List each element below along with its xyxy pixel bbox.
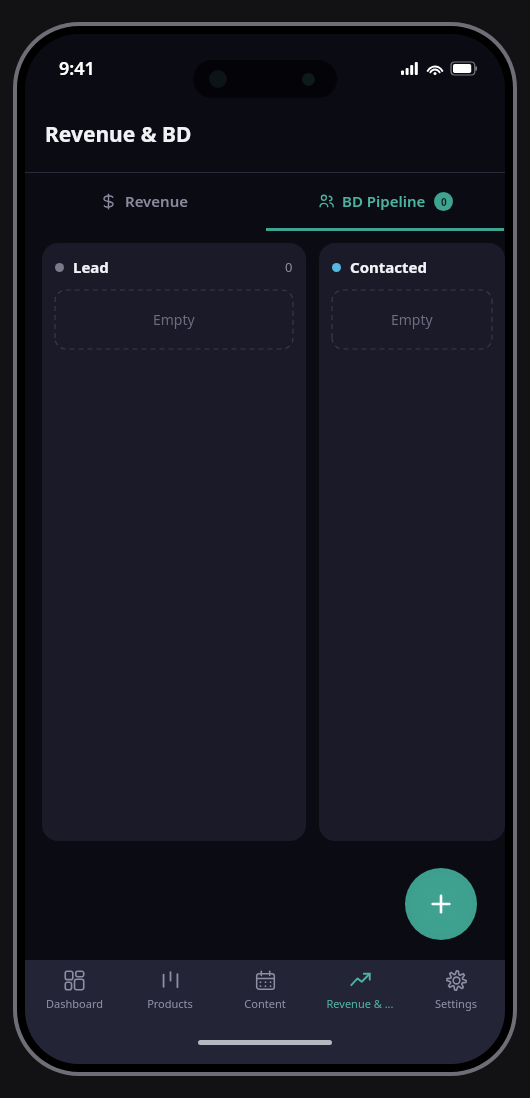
staticText: Dashboard: [46, 996, 103, 1011]
staticText: Revenue: [125, 191, 189, 211]
staticText: Revenue & BD: [45, 120, 192, 149]
button[interactable]: Products: [124, 970, 216, 1032]
button[interactable]: Content: [219, 970, 311, 1032]
staticText: Empty: [153, 310, 195, 329]
staticText: Contacted: [350, 257, 427, 277]
staticText: 0: [285, 258, 293, 276]
staticText: Content: [244, 996, 286, 1011]
button[interactable]: Dashboard: [28, 970, 120, 1032]
staticText: Revenue & ...: [326, 996, 394, 1011]
staticText: BD Pipeline: [342, 191, 426, 211]
staticText: 9:41: [59, 56, 95, 81]
button[interactable]: Revenue: [25, 173, 265, 228]
staticText: Settings: [435, 996, 477, 1011]
staticText: 0: [441, 195, 447, 209]
button[interactable]: Revenue & ...: [314, 970, 406, 1032]
staticText: Empty: [391, 310, 433, 329]
button[interactable]: Settings: [410, 970, 502, 1032]
button[interactable]: Contacted: [319, 243, 505, 841]
staticText: Lead: [73, 257, 109, 277]
button[interactable]: BD Pipeline: [265, 173, 505, 228]
staticText: Products: [147, 996, 193, 1011]
button[interactable]: Add: [405, 868, 477, 940]
button[interactable]: Lead: [42, 243, 306, 841]
